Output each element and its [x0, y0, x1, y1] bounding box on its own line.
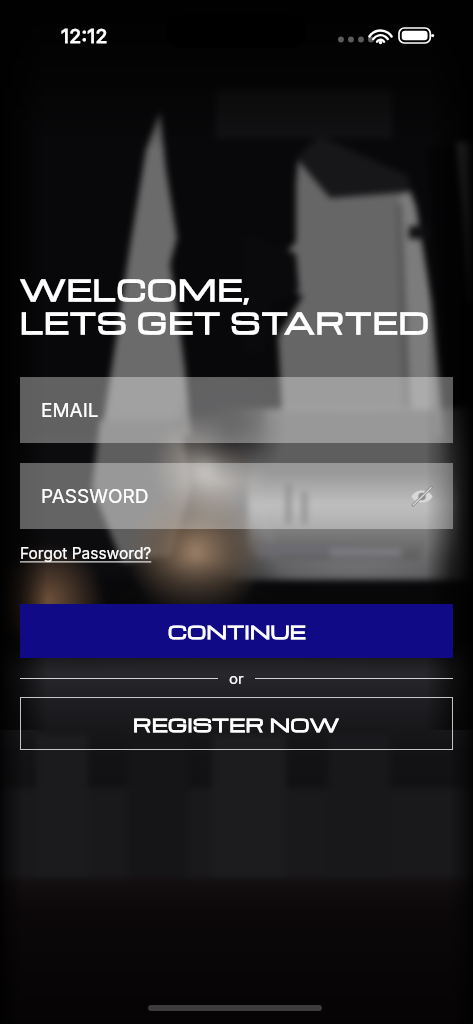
staticText: LETS GET STARTED [20, 302, 431, 342]
staticText: EMAIL [41, 399, 99, 422]
staticText: LETS GET STARTED [20, 302, 431, 342]
button[interactable]: PASSWORD [20, 463, 453, 529]
staticText: CONTINUE [168, 618, 306, 644]
button[interactable]: Show password [407, 481, 437, 511]
staticText: PASSWORD [41, 485, 149, 508]
staticText: WELCOME, [20, 269, 251, 309]
staticText: Forgot Password? [20, 544, 152, 563]
staticText: CONTINUE [168, 618, 306, 644]
button[interactable]: CONTINUE [20, 604, 453, 658]
button[interactable]: EMAIL [20, 377, 453, 443]
button[interactable]: Forgot Password? [20, 544, 152, 563]
staticText: or [229, 669, 244, 687]
button[interactable]: REGISTER NOW [20, 697, 453, 750]
staticText: WELCOME, [20, 269, 251, 309]
staticText: REGISTER NOW [133, 711, 340, 737]
staticText: REGISTER NOW [133, 711, 340, 737]
staticText: 12:12 [61, 24, 108, 48]
